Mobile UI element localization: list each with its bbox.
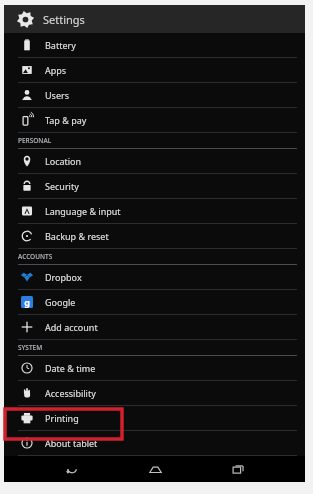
button[interactable]: Add account — [4, 315, 305, 340]
staticText: Backup & reset — [45, 230, 109, 242]
staticText: ACCOUNTS — [18, 252, 53, 261]
button[interactable]: Dropbox — [4, 265, 305, 290]
staticText: g — [24, 296, 30, 308]
button[interactable]: Recent apps — [221, 456, 255, 482]
button[interactable]: g — [4, 290, 305, 315]
button[interactable]: Home — [138, 456, 172, 482]
staticText: Battery — [45, 39, 76, 51]
staticText: Printing — [45, 412, 79, 424]
staticText: Apps — [45, 64, 67, 76]
staticText: Location — [45, 155, 82, 167]
button[interactable]: Battery — [4, 33, 305, 58]
staticText: Security — [45, 180, 79, 192]
staticText: PERSONAL — [18, 136, 52, 145]
staticText: Accessibility — [45, 387, 96, 399]
staticText: Users — [45, 89, 69, 101]
button[interactable]: Settings — [4, 5, 305, 33]
button[interactable]: Tap & pay — [4, 108, 305, 133]
staticText: Google — [45, 296, 76, 308]
button[interactable]: Accessibility — [4, 381, 305, 406]
button[interactable]: Apps — [4, 58, 305, 83]
staticText: SYSTEM — [18, 343, 43, 352]
button[interactable]: Backup & reset — [4, 224, 305, 249]
staticText: Tap & pay — [45, 114, 87, 126]
button[interactable]: Back — [54, 456, 88, 482]
button[interactable]: Security — [4, 174, 305, 199]
staticText: Add account — [45, 321, 98, 333]
staticText: Language & input — [45, 205, 121, 217]
staticText: Settings — [43, 12, 85, 27]
button[interactable]: About tablet — [4, 431, 305, 456]
button[interactable]: Date & time — [4, 356, 305, 381]
staticText: Date & time — [45, 362, 96, 374]
button[interactable]: Users — [4, 83, 305, 108]
staticText: About tablet — [45, 437, 98, 449]
button[interactable]: Language & input — [4, 199, 305, 224]
staticText: Dropbox — [45, 271, 82, 283]
button[interactable]: Printing — [4, 406, 305, 431]
button[interactable]: Location — [4, 149, 305, 174]
